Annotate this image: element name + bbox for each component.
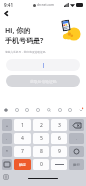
staticText: 3 xyxy=(58,122,61,129)
button[interactable]: keyboard tool 7 xyxy=(77,106,84,113)
button[interactable]: Voice input xyxy=(3,174,9,180)
button[interactable]: 6 xyxy=(51,133,67,144)
staticText: * xyxy=(6,149,8,154)
button[interactable]: keyboard tool 4 xyxy=(45,106,52,113)
staticText: 8 xyxy=(40,148,43,155)
staticText: 手机号码是? xyxy=(5,36,44,46)
button[interactable]: + xyxy=(2,119,12,131)
staticText: 5 xyxy=(40,135,43,142)
button[interactable]: keyboard tool 3 xyxy=(34,106,41,113)
staticText: drcnet.com xyxy=(37,3,54,7)
staticText: 9 xyxy=(58,148,61,155)
button[interactable]: 0 xyxy=(33,159,49,170)
staticText: + xyxy=(6,123,9,128)
staticText: Hi, 你的 xyxy=(5,26,31,36)
button[interactable]: keyboard tool 5 xyxy=(56,106,63,113)
staticText: 9:41 xyxy=(4,2,13,8)
staticText: 6 xyxy=(58,135,61,142)
staticText: 4 xyxy=(21,135,24,142)
button[interactable]: 3 xyxy=(51,119,67,131)
button[interactable]: 1 xyxy=(14,119,31,131)
button[interactable]: 获取短信验证码 xyxy=(6,75,80,87)
staticText: 2 xyxy=(40,122,43,129)
staticText: 7 xyxy=(21,148,24,155)
staticText: 1 xyxy=(21,122,24,129)
staticText: 请输入手机号，我们将发送验证码 xyxy=(5,50,46,53)
button[interactable]: 5 xyxy=(33,133,49,144)
staticText: 0 xyxy=(40,161,43,168)
button[interactable]: 4 xyxy=(14,133,31,144)
button[interactable]: keyboard tool 2 xyxy=(23,106,30,113)
button[interactable]: 9 xyxy=(51,146,67,157)
button[interactable]: keyboard tool 0 xyxy=(2,106,9,113)
button[interactable]: keyboard tool 6 xyxy=(66,106,73,113)
button[interactable]: 换行 xyxy=(69,159,84,170)
button[interactable]: Switch keyboard xyxy=(2,159,12,170)
button[interactable] xyxy=(6,59,80,71)
button[interactable]: Backspace xyxy=(69,119,84,131)
button[interactable]: Back xyxy=(2,9,11,18)
button[interactable]: 2 xyxy=(33,119,49,131)
button[interactable]: * xyxy=(2,146,12,157)
staticText: 获取短信验证码 xyxy=(30,79,57,84)
button[interactable]: 8 xyxy=(33,146,49,157)
button[interactable]: Space xyxy=(51,159,67,170)
button[interactable]: - xyxy=(2,133,12,144)
staticText: 换行 xyxy=(73,163,80,167)
button[interactable]: 7 xyxy=(14,146,31,157)
button[interactable]: Emoji xyxy=(69,146,84,157)
staticText: 确定 xyxy=(19,163,26,167)
staticText: . xyxy=(76,136,77,141)
staticText: - xyxy=(6,136,8,141)
button[interactable]: keyboard tool 1 xyxy=(13,106,20,113)
button[interactable]: 确定 xyxy=(14,159,31,170)
